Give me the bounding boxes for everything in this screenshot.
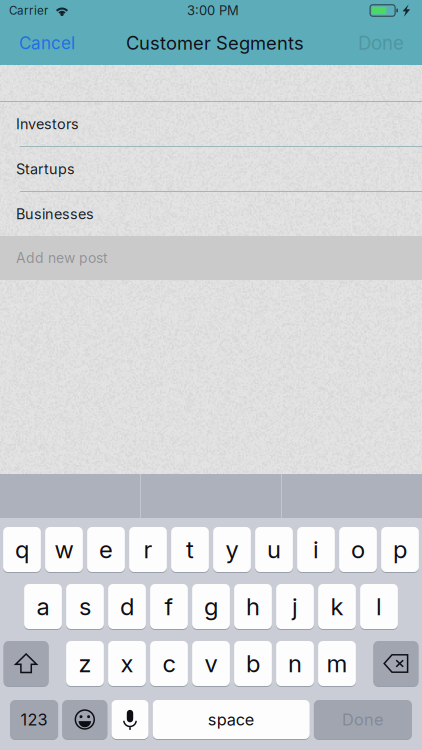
button[interactable]: j bbox=[276, 584, 314, 629]
button[interactable]: Done bbox=[314, 700, 412, 739]
staticText: q bbox=[15, 535, 29, 564]
staticText: x bbox=[120, 649, 133, 678]
button[interactable]: d bbox=[108, 584, 146, 629]
button[interactable]: s bbox=[66, 584, 104, 629]
button[interactable]: k bbox=[318, 584, 356, 629]
staticText: m bbox=[326, 649, 347, 678]
button[interactable] bbox=[62, 700, 107, 739]
button[interactable]: o bbox=[339, 527, 377, 572]
staticText: Investors bbox=[16, 115, 79, 133]
button[interactable]: v bbox=[192, 641, 230, 686]
staticText: b bbox=[246, 649, 260, 678]
staticText: Add new post bbox=[16, 250, 108, 266]
staticText: r bbox=[143, 535, 152, 564]
staticText: Cancel bbox=[19, 33, 75, 53]
button[interactable] bbox=[4, 641, 49, 686]
staticText: y bbox=[225, 535, 238, 564]
staticText: a bbox=[36, 592, 49, 621]
staticText: Done bbox=[358, 32, 404, 54]
button[interactable]: w bbox=[45, 527, 83, 572]
button[interactable]: Businesses bbox=[0, 192, 422, 236]
staticText: Businesses bbox=[16, 205, 94, 223]
staticText: c bbox=[162, 649, 175, 678]
staticText: l bbox=[376, 592, 382, 621]
staticText: Done bbox=[342, 710, 384, 729]
staticText: j bbox=[292, 592, 298, 621]
button[interactable]: Done bbox=[349, 21, 413, 65]
button[interactable]: i bbox=[297, 527, 335, 572]
staticText: p bbox=[393, 535, 407, 564]
button[interactable]: c bbox=[150, 641, 188, 686]
button[interactable]: Investors bbox=[0, 102, 422, 146]
staticText: d bbox=[120, 592, 134, 621]
button[interactable]: r bbox=[129, 527, 167, 572]
button[interactable]: space bbox=[153, 700, 310, 739]
staticText: u bbox=[267, 535, 281, 564]
button[interactable]: Cancel bbox=[10, 21, 84, 65]
staticText: e bbox=[99, 535, 113, 564]
staticText: w bbox=[54, 535, 73, 564]
button[interactable]: a bbox=[24, 584, 62, 629]
staticText: Carrier bbox=[9, 3, 48, 17]
staticText: h bbox=[246, 592, 260, 621]
button[interactable] bbox=[373, 641, 418, 686]
staticText: 3:00 PM bbox=[187, 3, 239, 18]
staticText: o bbox=[351, 535, 365, 564]
staticText: g bbox=[204, 592, 218, 621]
staticText: v bbox=[204, 649, 217, 678]
button[interactable]: 123 bbox=[10, 700, 58, 739]
staticText: Startups bbox=[16, 160, 75, 178]
button[interactable]: f bbox=[150, 584, 188, 629]
button[interactable]: g bbox=[192, 584, 230, 629]
staticText: space bbox=[208, 710, 255, 729]
staticText: 123 bbox=[21, 710, 48, 729]
button[interactable]: t bbox=[171, 527, 209, 572]
button[interactable]: x bbox=[108, 641, 146, 686]
staticText: Customer Segments bbox=[126, 32, 304, 54]
button[interactable]: Add new post bbox=[0, 236, 422, 280]
staticText: t bbox=[186, 535, 194, 564]
button[interactable]: z bbox=[66, 641, 104, 686]
button[interactable] bbox=[111, 700, 148, 739]
staticText: s bbox=[79, 592, 91, 621]
button[interactable]: Startups bbox=[0, 147, 422, 191]
staticText: n bbox=[288, 649, 302, 678]
button[interactable]: n bbox=[276, 641, 314, 686]
staticText: z bbox=[78, 649, 91, 678]
button[interactable]: l bbox=[360, 584, 398, 629]
staticText: f bbox=[164, 592, 173, 621]
button[interactable]: p bbox=[381, 527, 419, 572]
button[interactable]: m bbox=[318, 641, 356, 686]
button[interactable]: q bbox=[3, 527, 41, 572]
button[interactable]: u bbox=[255, 527, 293, 572]
button[interactable]: h bbox=[234, 584, 272, 629]
staticText: i bbox=[313, 535, 319, 564]
button[interactable]: y bbox=[213, 527, 251, 572]
staticText: k bbox=[330, 592, 343, 621]
button[interactable]: b bbox=[234, 641, 272, 686]
button[interactable]: e bbox=[87, 527, 125, 572]
